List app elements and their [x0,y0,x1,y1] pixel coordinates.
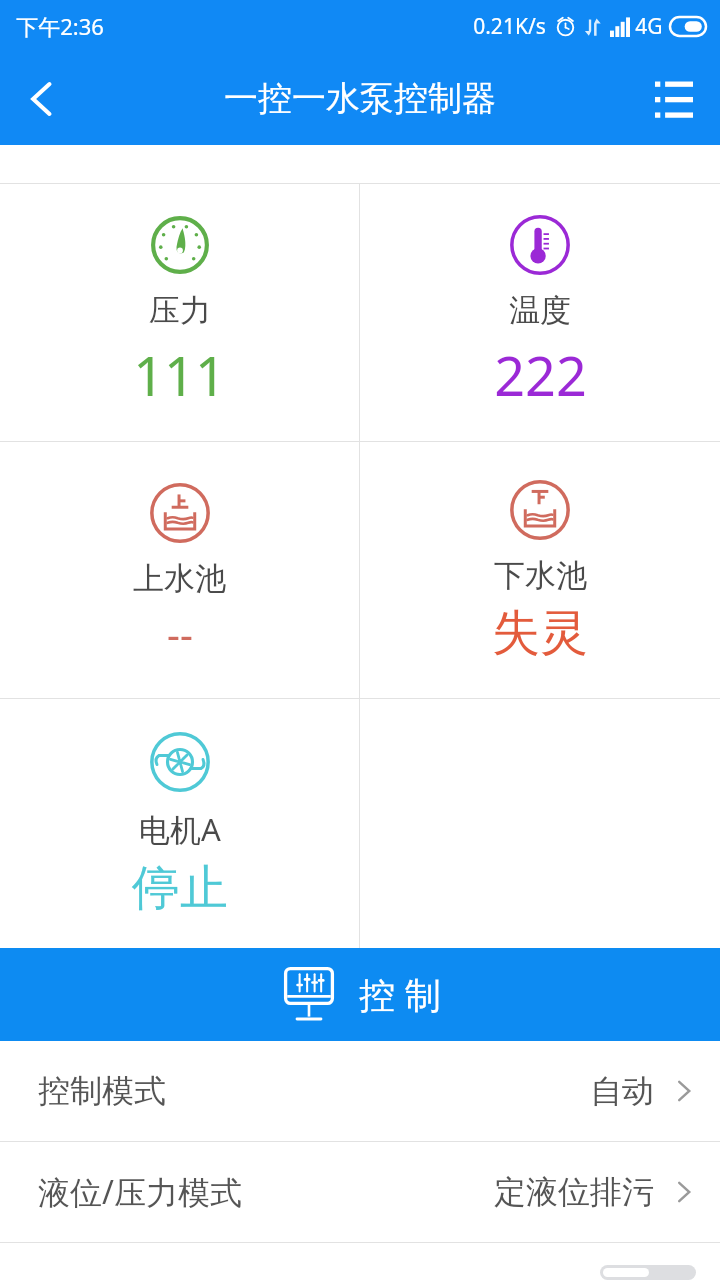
staticText: 控 制 [359,970,441,1019]
staticText: 温度 [509,291,571,330]
staticText: 失灵 [492,603,588,663]
button[interactable]: 上水池 [0,442,359,698]
button[interactable]: 电机A [0,699,359,948]
staticText: 停止 [132,858,228,918]
staticText: 下水池 [494,556,587,595]
staticText: 111 [133,338,226,412]
staticText: 上水池 [133,559,226,598]
staticText: 控制模式 [38,1071,166,1111]
staticText: 下午2:36 [16,11,104,41]
staticText: 一控一水泵控制器 [224,77,496,120]
button[interactable]: Menu [642,67,706,131]
staticText: -- [167,606,193,660]
staticText: 电机A [139,808,221,850]
button[interactable]: 液位/压力模式 [0,1142,720,1242]
staticText: 4G [635,12,663,41]
button[interactable]: 控 制 [0,948,720,1041]
staticText: 0.21K/s [473,12,546,41]
button[interactable]: 控制模式 [0,1041,720,1141]
button[interactable]: 温度 [360,184,720,441]
staticText: 定液位排污 [494,1172,654,1212]
staticText: 自动 [590,1071,654,1111]
button[interactable] [0,1243,720,1280]
staticText: 液位/压力模式 [38,1170,242,1214]
button[interactable]: 下水池 [360,442,720,698]
button[interactable]: Back [10,67,74,131]
staticText: 压力 [149,291,211,330]
button[interactable]: 压力 [0,184,359,441]
staticText: 222 [494,338,587,412]
